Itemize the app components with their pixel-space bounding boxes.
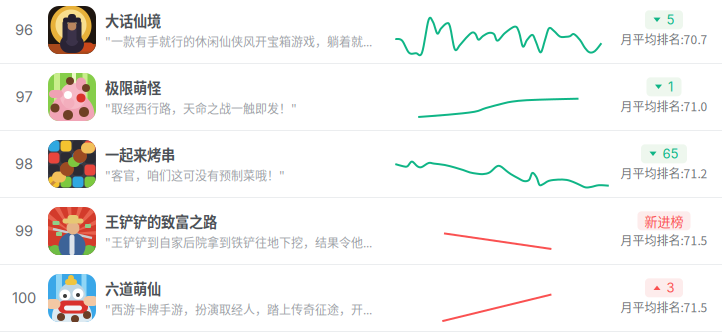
- staticText: "取经西行路，天命之战一触即发！": [105, 100, 297, 117]
- staticText: 月平均排名:71.5: [620, 231, 707, 249]
- staticText: 5: [666, 12, 674, 28]
- staticText: 王铲铲的致富之路: [105, 211, 217, 232]
- button[interactable]: 96: [0, 0, 722, 64]
- staticText: 新进榜: [644, 211, 683, 230]
- staticText: 月平均排名:71.0: [620, 97, 707, 115]
- staticText: 月平均排名:71.2: [620, 164, 707, 182]
- staticText: 98: [15, 155, 33, 173]
- staticText: 1: [668, 79, 673, 95]
- staticText: 96: [15, 21, 33, 39]
- staticText: 月平均排名:71.5: [620, 298, 707, 316]
- staticText: 65: [662, 146, 678, 162]
- button[interactable]: 100: [0, 265, 722, 332]
- button[interactable]: 99: [0, 198, 722, 265]
- button[interactable]: 97: [0, 64, 722, 131]
- staticText: "一款有手就行的休闲仙侠风开宝箱游戏，躺着就...: [105, 33, 372, 50]
- staticText: 97: [15, 88, 32, 106]
- staticText: "王铲铲到自家后院拿到铁铲往地下挖，结果令他...: [105, 234, 372, 251]
- staticText: 极限萌怪: [105, 77, 161, 98]
- staticText: 100: [12, 289, 36, 307]
- staticText: 一起来烤串: [105, 144, 175, 165]
- staticText: "客官，咱们这可没有预制菜哦！": [105, 167, 285, 184]
- button[interactable]: 98: [0, 131, 722, 198]
- staticText: 99: [15, 222, 33, 240]
- staticText: 3: [666, 280, 674, 296]
- staticText: 大话仙境: [105, 10, 161, 31]
- staticText: 月平均排名:70.7: [620, 30, 707, 48]
- staticText: "西游卡牌手游，扮演取经人，踏上传奇征途，开...: [105, 301, 372, 318]
- staticText: 六道萌仙: [105, 278, 161, 299]
